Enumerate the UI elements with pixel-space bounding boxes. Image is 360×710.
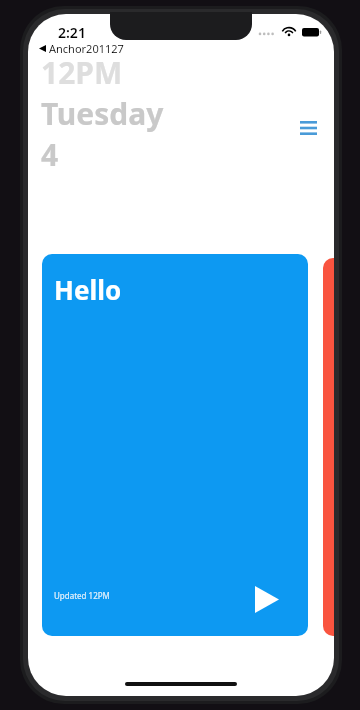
staticText: 2:21 — [58, 23, 86, 42]
staticText: 12PM — [41, 52, 123, 93]
staticText: Tuesday — [41, 93, 164, 134]
button[interactable]: Menu — [290, 110, 326, 146]
button[interactable] — [323, 258, 334, 636]
button[interactable]: Anchor201127 — [35, 39, 128, 58]
staticText: Updated 12PM — [54, 590, 110, 601]
staticText: Anchor201127 — [49, 41, 124, 56]
staticText: 4 — [41, 134, 59, 175]
button[interactable]: Hello — [42, 254, 308, 636]
staticText: Hello — [54, 272, 122, 307]
button[interactable]: Play — [250, 582, 284, 616]
